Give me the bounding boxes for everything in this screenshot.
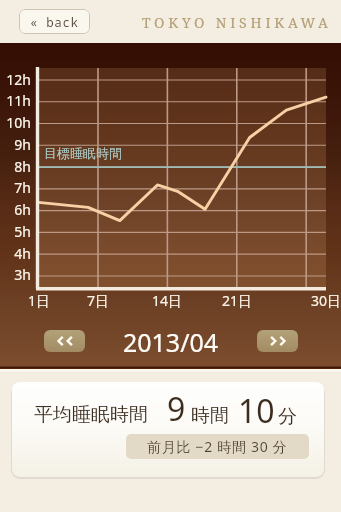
staticText: 3h <box>0 265 31 284</box>
staticText: « back <box>30 14 79 31</box>
button[interactable]: Previous month <box>44 330 85 352</box>
staticText: 4h <box>0 244 31 263</box>
staticText: 時間 <box>191 404 229 428</box>
staticText: 12h <box>0 70 31 89</box>
button[interactable]: Back <box>19 9 90 34</box>
button[interactable]: 平均睡眠時間 <box>12 382 324 477</box>
staticText: 目標睡眠時間 <box>44 145 122 161</box>
staticText: 2013/04 <box>0 325 341 359</box>
staticText: 21日 <box>212 291 262 310</box>
staticText: 14日 <box>142 291 192 310</box>
staticText: 平均睡眠時間 <box>34 403 148 427</box>
staticText: 前月比 −2 時間 30 分 <box>147 437 288 456</box>
button[interactable]: Next month <box>257 330 298 352</box>
staticText: 5h <box>0 222 31 241</box>
staticText: 9 <box>167 387 186 431</box>
staticText: TOKYO NISHIKAWA <box>142 13 332 32</box>
staticText: 10h <box>0 113 31 132</box>
staticText: 6h <box>0 200 31 219</box>
staticText: 8h <box>0 157 31 176</box>
staticText: 30日 <box>301 291 341 310</box>
staticText: 11h <box>0 91 31 110</box>
staticText: 7日 <box>73 291 123 310</box>
staticText: 7h <box>0 178 31 197</box>
staticText: 9h <box>0 135 31 154</box>
staticText: 分 <box>278 405 297 429</box>
staticText: 1日 <box>14 291 64 310</box>
staticText: 10 <box>238 389 275 433</box>
